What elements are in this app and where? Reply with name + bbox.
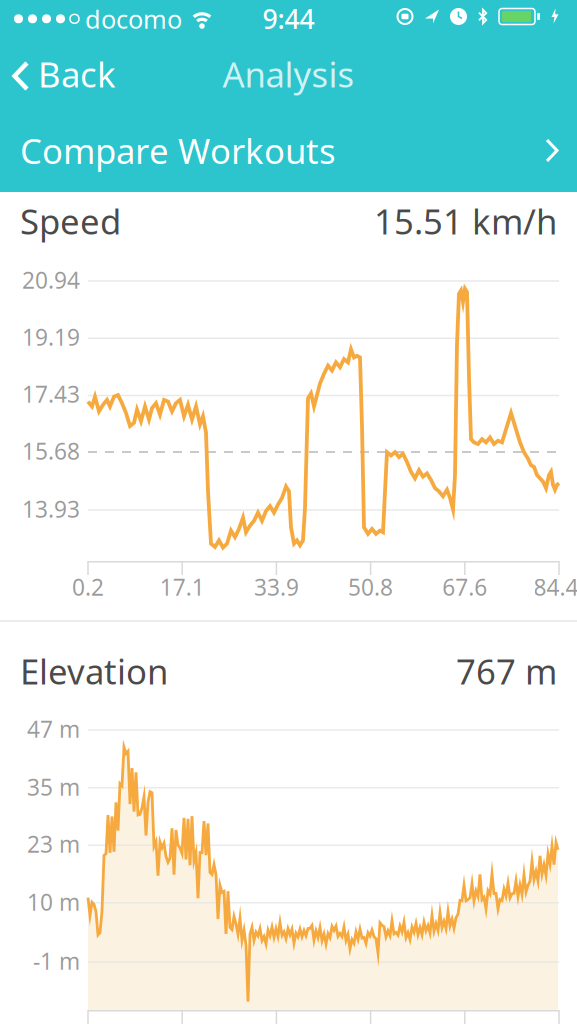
button[interactable]: Compare Workouts [0, 112, 577, 189]
staticText: 33.9 [254, 572, 299, 602]
staticText: Analysis [222, 51, 354, 97]
staticText: 0.2 [72, 572, 104, 602]
staticText: 17.43 [22, 379, 80, 409]
staticText: 19.19 [22, 322, 80, 352]
staticText: 10 m [27, 887, 80, 917]
button[interactable]: Back [10, 51, 130, 101]
staticText: 767 m [456, 648, 557, 694]
staticText: 35 m [27, 772, 80, 802]
staticText: Speed [20, 198, 121, 244]
staticText: 47 m [27, 714, 80, 744]
staticText: 17.1 [160, 572, 205, 602]
staticText: 15.51 km/h [374, 198, 557, 244]
staticText: 67.6 [442, 572, 487, 602]
staticText: 84.4 [533, 572, 577, 602]
staticText: 50.8 [348, 572, 393, 602]
staticText: 23 m [27, 829, 80, 859]
staticText: Elevation [20, 648, 168, 694]
staticText: 15.68 [22, 436, 80, 466]
staticText: -1 m [33, 946, 80, 976]
staticText: Compare Workouts [20, 127, 336, 173]
staticText: 13.93 [22, 494, 80, 524]
staticText: 9:44 [262, 1, 314, 36]
staticText: 20.94 [22, 265, 80, 295]
staticText: docomo [85, 2, 182, 36]
staticText: Back [38, 51, 116, 97]
